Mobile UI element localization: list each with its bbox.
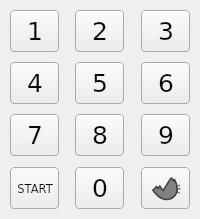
- button[interactable]: 7: [10, 114, 59, 156]
- button[interactable]: Bird: [141, 167, 190, 209]
- button[interactable]: 5: [75, 62, 124, 104]
- staticText: START: [17, 182, 53, 195]
- button[interactable]: 6: [141, 62, 190, 104]
- button[interactable]: 0: [75, 167, 124, 209]
- staticText: 7: [27, 121, 43, 150]
- staticText: 1: [27, 17, 43, 46]
- button[interactable]: 2: [75, 10, 124, 52]
- staticText: 3: [158, 17, 174, 46]
- button[interactable]: 3: [141, 10, 190, 52]
- staticText: 8: [92, 121, 108, 150]
- staticText: 2: [92, 17, 108, 46]
- staticText: 6: [158, 69, 174, 98]
- button[interactable]: 1: [10, 10, 59, 52]
- button[interactable]: 4: [10, 62, 59, 104]
- button[interactable]: 8: [75, 114, 124, 156]
- button[interactable]: 9: [141, 114, 190, 156]
- staticText: 9: [158, 121, 174, 150]
- staticText: 4: [27, 69, 43, 98]
- staticText: 5: [92, 69, 108, 98]
- button[interactable]: START: [10, 167, 59, 209]
- staticText: 0: [92, 174, 108, 203]
